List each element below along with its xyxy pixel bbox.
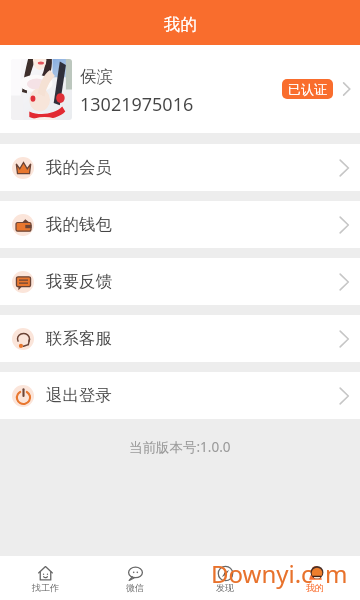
button[interactable]: 已认证 (282, 79, 333, 99)
staticText: 我的会员 (46, 157, 112, 178)
staticText: 我的 (306, 582, 324, 593)
staticText: 侯滨 (80, 66, 113, 87)
button[interactable]: 我的会员 (0, 144, 360, 191)
button[interactable]: 退出登录 (0, 372, 360, 419)
staticText: 已认证 (288, 81, 327, 97)
staticText: 13021975016 (80, 92, 194, 117)
staticText: 我的 (164, 14, 197, 35)
staticText: 发现 (216, 582, 234, 593)
button[interactable]: 我要反馈 (0, 258, 360, 305)
staticText: 我的钱包 (46, 214, 112, 235)
staticText: 微信 (126, 582, 144, 593)
button[interactable]: Discover (180, 556, 270, 600)
staticText: 我要反馈 (46, 271, 112, 292)
button[interactable]: 我的钱包 (0, 201, 360, 248)
button[interactable]: Jobs (0, 556, 90, 600)
button[interactable]: 联系客服 (0, 315, 360, 362)
button[interactable]: Mine (270, 556, 360, 600)
button[interactable]: 侯滨 (0, 45, 360, 133)
staticText: 当前版本号:1.0.0 (129, 438, 231, 456)
staticText: 联系客服 (46, 328, 112, 349)
staticText: 找工作 (32, 582, 59, 593)
staticText: Downyi.c m (211, 557, 348, 590)
button[interactable]: WeChat (90, 556, 180, 600)
staticText: 退出登录 (46, 385, 112, 406)
